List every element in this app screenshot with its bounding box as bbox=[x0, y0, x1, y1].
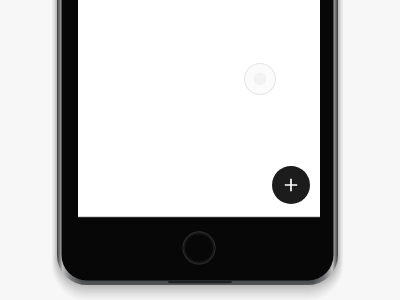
button[interactable]: Add placeholder bbox=[244, 63, 276, 95]
button[interactable]: Add bbox=[272, 166, 310, 204]
button[interactable]: Home bbox=[182, 231, 216, 265]
